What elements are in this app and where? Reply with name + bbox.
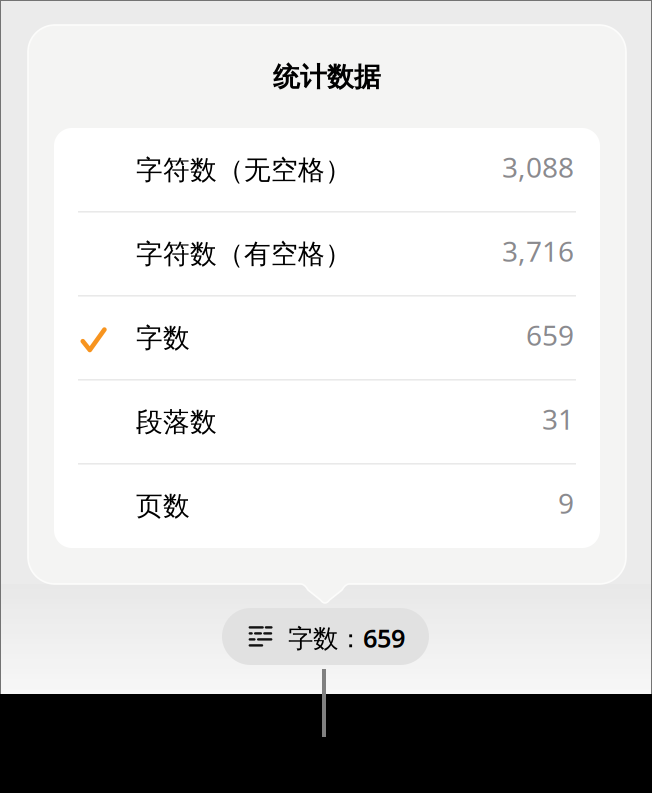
staticText: 659 [526, 316, 574, 354]
staticText: 页数 [136, 490, 190, 522]
button[interactable]: 字符数（有空格） [54, 212, 600, 296]
button[interactable]: 页数 [54, 464, 600, 548]
staticText: 31 [542, 400, 574, 438]
button[interactable]: 字数：659 [222, 608, 429, 665]
staticText: 字数：659 [288, 621, 405, 655]
staticText: 字符数（有空格） [136, 238, 352, 270]
staticText: 字符数（无空格） [136, 154, 352, 186]
staticText: 段落数 [136, 406, 217, 438]
button[interactable]: 字符数（无空格） [54, 128, 600, 212]
staticText: 9 [558, 484, 574, 522]
staticText: 3,088 [502, 148, 574, 186]
staticText: 3,716 [502, 232, 574, 270]
button[interactable]: 段落数 [54, 380, 600, 464]
button[interactable]: 字数 [54, 296, 600, 380]
staticText: 字数 [136, 322, 190, 354]
staticText: 统计数据 [273, 61, 381, 93]
